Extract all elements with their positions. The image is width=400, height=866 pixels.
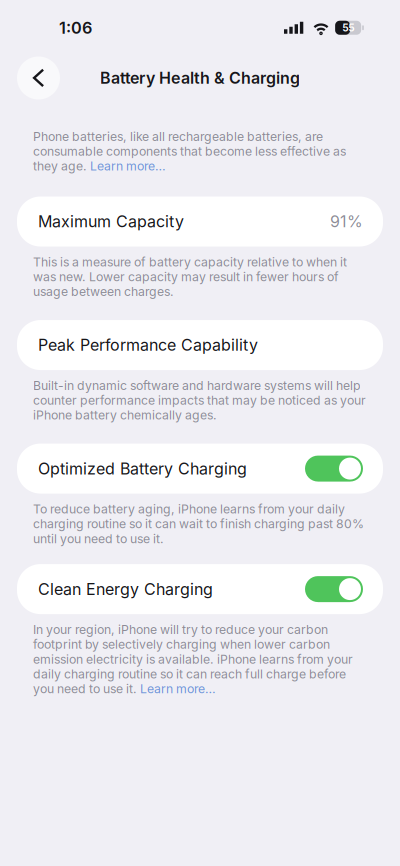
staticText: Optimized Battery Charging: [38, 459, 247, 478]
button[interactable]: Peak Performance Capability: [17, 320, 383, 370]
staticText: In your region, iPhone will try to reduc…: [33, 622, 353, 696]
staticText: 55: [342, 22, 354, 34]
staticText: Peak Performance Capability: [38, 335, 258, 355]
staticText: 91%: [330, 212, 363, 231]
button[interactable]: Back: [17, 56, 60, 99]
staticText: Clean Energy Charging: [38, 579, 213, 599]
staticText: 1:06: [59, 18, 92, 38]
staticText: To reduce battery aging, iPhone learns f…: [33, 502, 364, 546]
button[interactable]: Maximum Capacity: [17, 196, 383, 246]
staticText: Phone batteries, like all rechargeable b…: [33, 129, 346, 173]
staticText: Maximum Capacity: [38, 212, 184, 231]
staticText: Battery Health & Charging: [100, 68, 300, 88]
staticText: This is a measure of battery capacity re…: [33, 254, 347, 299]
button[interactable]: Clean Energy Charging: [17, 564, 383, 614]
button[interactable]: Optimized Battery Charging: [17, 444, 383, 494]
staticText: Built-in dynamic software and hardware s…: [33, 378, 366, 423]
